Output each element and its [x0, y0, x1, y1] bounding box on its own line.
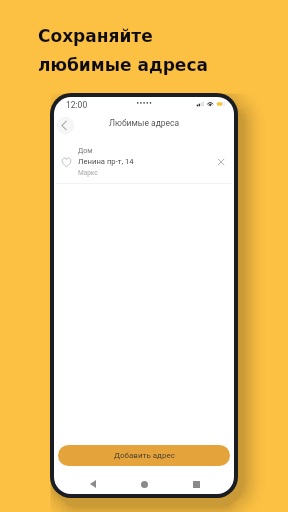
staticText: любимые адреса — [38, 55, 208, 75]
button[interactable]: Remove address — [211, 152, 231, 172]
staticText: 12:00 — [66, 100, 88, 110]
staticText: Любимые адреса — [109, 118, 180, 128]
staticText: Дом — [78, 147, 93, 155]
button[interactable]: Recent apps — [189, 477, 203, 491]
staticText: Маркс — [78, 169, 98, 177]
button[interactable]: Back — [57, 117, 74, 134]
button[interactable]: Back — [86, 477, 100, 491]
staticText: Ленина пр-т, 14 — [78, 157, 134, 166]
staticText: Сохраняйте — [38, 26, 153, 46]
button[interactable]: Home — [137, 477, 151, 491]
button[interactable]: Добавить адрес — [58, 445, 230, 466]
staticText: Добавить адрес — [114, 451, 175, 460]
